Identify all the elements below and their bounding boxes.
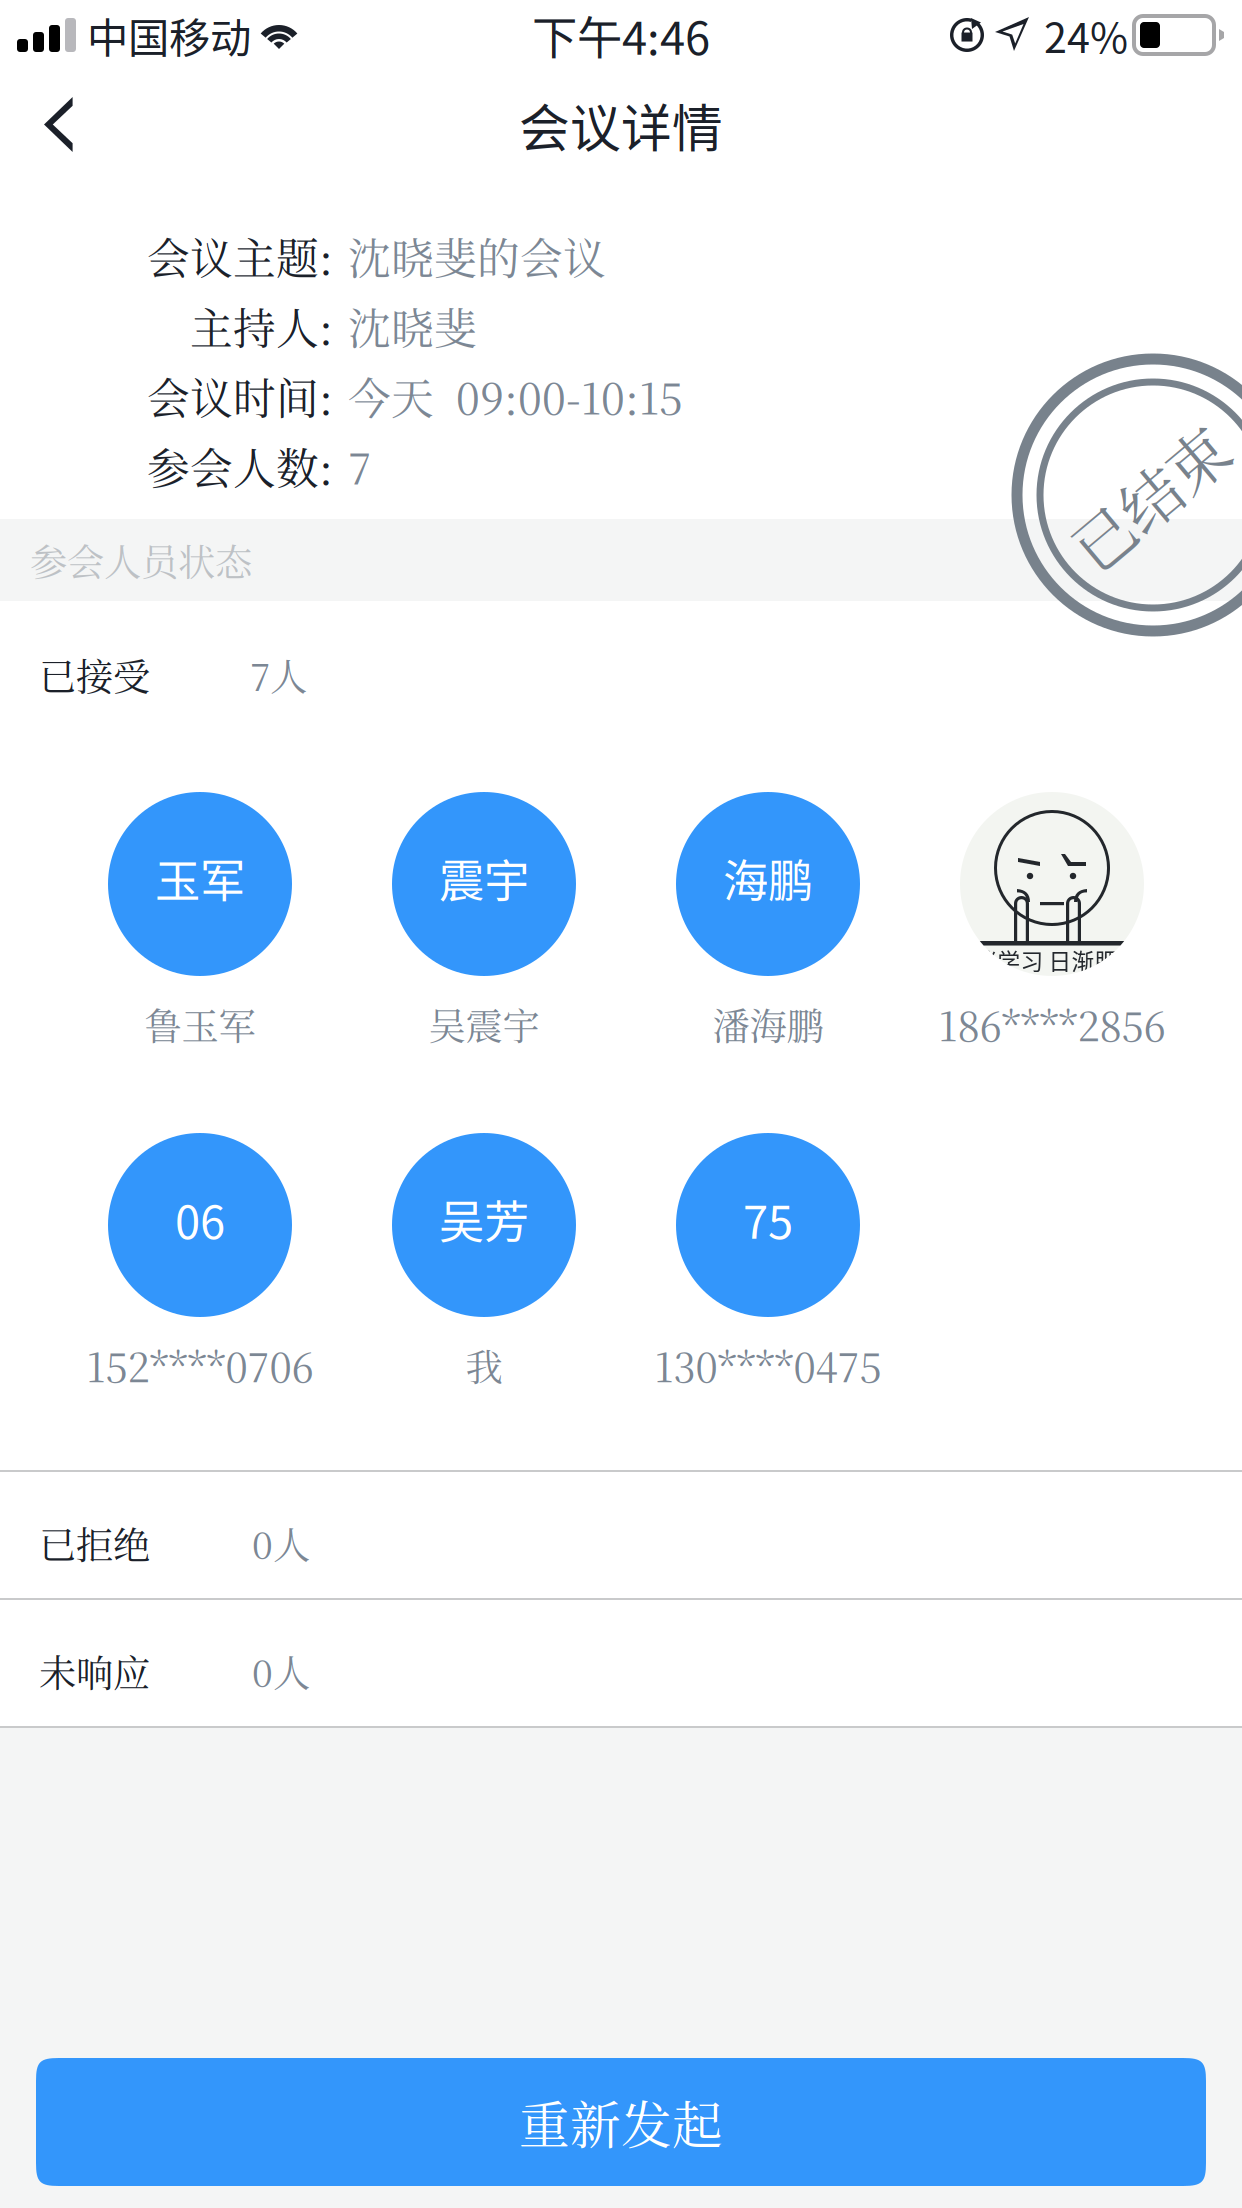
staticText: 152****0706 (86, 1336, 313, 1394)
staticText: 玉军 (155, 845, 245, 911)
button[interactable]: 震宇 (342, 792, 626, 1072)
staticText: 主持人: (190, 295, 333, 357)
button[interactable]: 海鹏 (626, 792, 910, 1072)
staticText: 吴震宇 (428, 997, 539, 1051)
button[interactable]: 玉军 (58, 792, 342, 1072)
staticText: 沉迷学习 日渐肥胖 (951, 944, 1140, 976)
button[interactable]: 沉迷学习 日渐肥胖 (910, 792, 1194, 1072)
staticText: 已结束 (1057, 453, 1240, 541)
button[interactable]: 吴芳 (342, 1133, 626, 1413)
staticText: 7人 (250, 648, 307, 702)
staticText: 沈晓斐的会议 (348, 225, 606, 287)
staticText: 75 (743, 1186, 793, 1252)
staticText: 震宇 (439, 845, 529, 911)
staticText: 186****2856 (938, 995, 1165, 1053)
staticText: 已接受 (39, 648, 150, 702)
staticText: 会议时间: (147, 365, 333, 427)
button[interactable]: 返回 (0, 70, 130, 180)
staticText: 参会人数: (147, 435, 333, 497)
staticText: 已拒绝 (39, 1516, 150, 1570)
staticText: 24% (1044, 5, 1128, 65)
staticText: 今天 09:00-10:15 (348, 365, 683, 427)
staticText: 我 (465, 1338, 502, 1392)
button[interactable]: 重新发起 (36, 2058, 1206, 2186)
staticText: 会议主题: (147, 225, 333, 287)
staticText: 潘海鹏 (712, 997, 823, 1051)
button[interactable]: 未响应 (0, 1600, 1242, 1726)
staticText: 0人 (252, 1644, 310, 1698)
staticText: 130****0475 (654, 1336, 881, 1394)
staticText: 海鹏 (723, 845, 813, 911)
staticText: 0人 (252, 1516, 310, 1570)
staticText: 06 (175, 1186, 225, 1252)
button[interactable]: 75 (626, 1133, 910, 1413)
button[interactable]: 已拒绝 (0, 1472, 1242, 1598)
button[interactable]: 06 (58, 1133, 342, 1413)
staticText: 重新发起 (519, 2086, 723, 2158)
staticText: 吴芳 (439, 1186, 529, 1252)
staticText: 中国移动 (87, 5, 251, 65)
staticText: 未响应 (39, 1644, 150, 1698)
staticText: 会议详情 (519, 88, 723, 162)
staticText: 参会人员状态 (30, 533, 252, 587)
staticText: 下午4:46 (532, 2, 710, 68)
staticText: 沈晓斐 (348, 295, 477, 357)
staticText: 7 (348, 435, 371, 497)
staticText: 鲁玉军 (144, 997, 255, 1051)
